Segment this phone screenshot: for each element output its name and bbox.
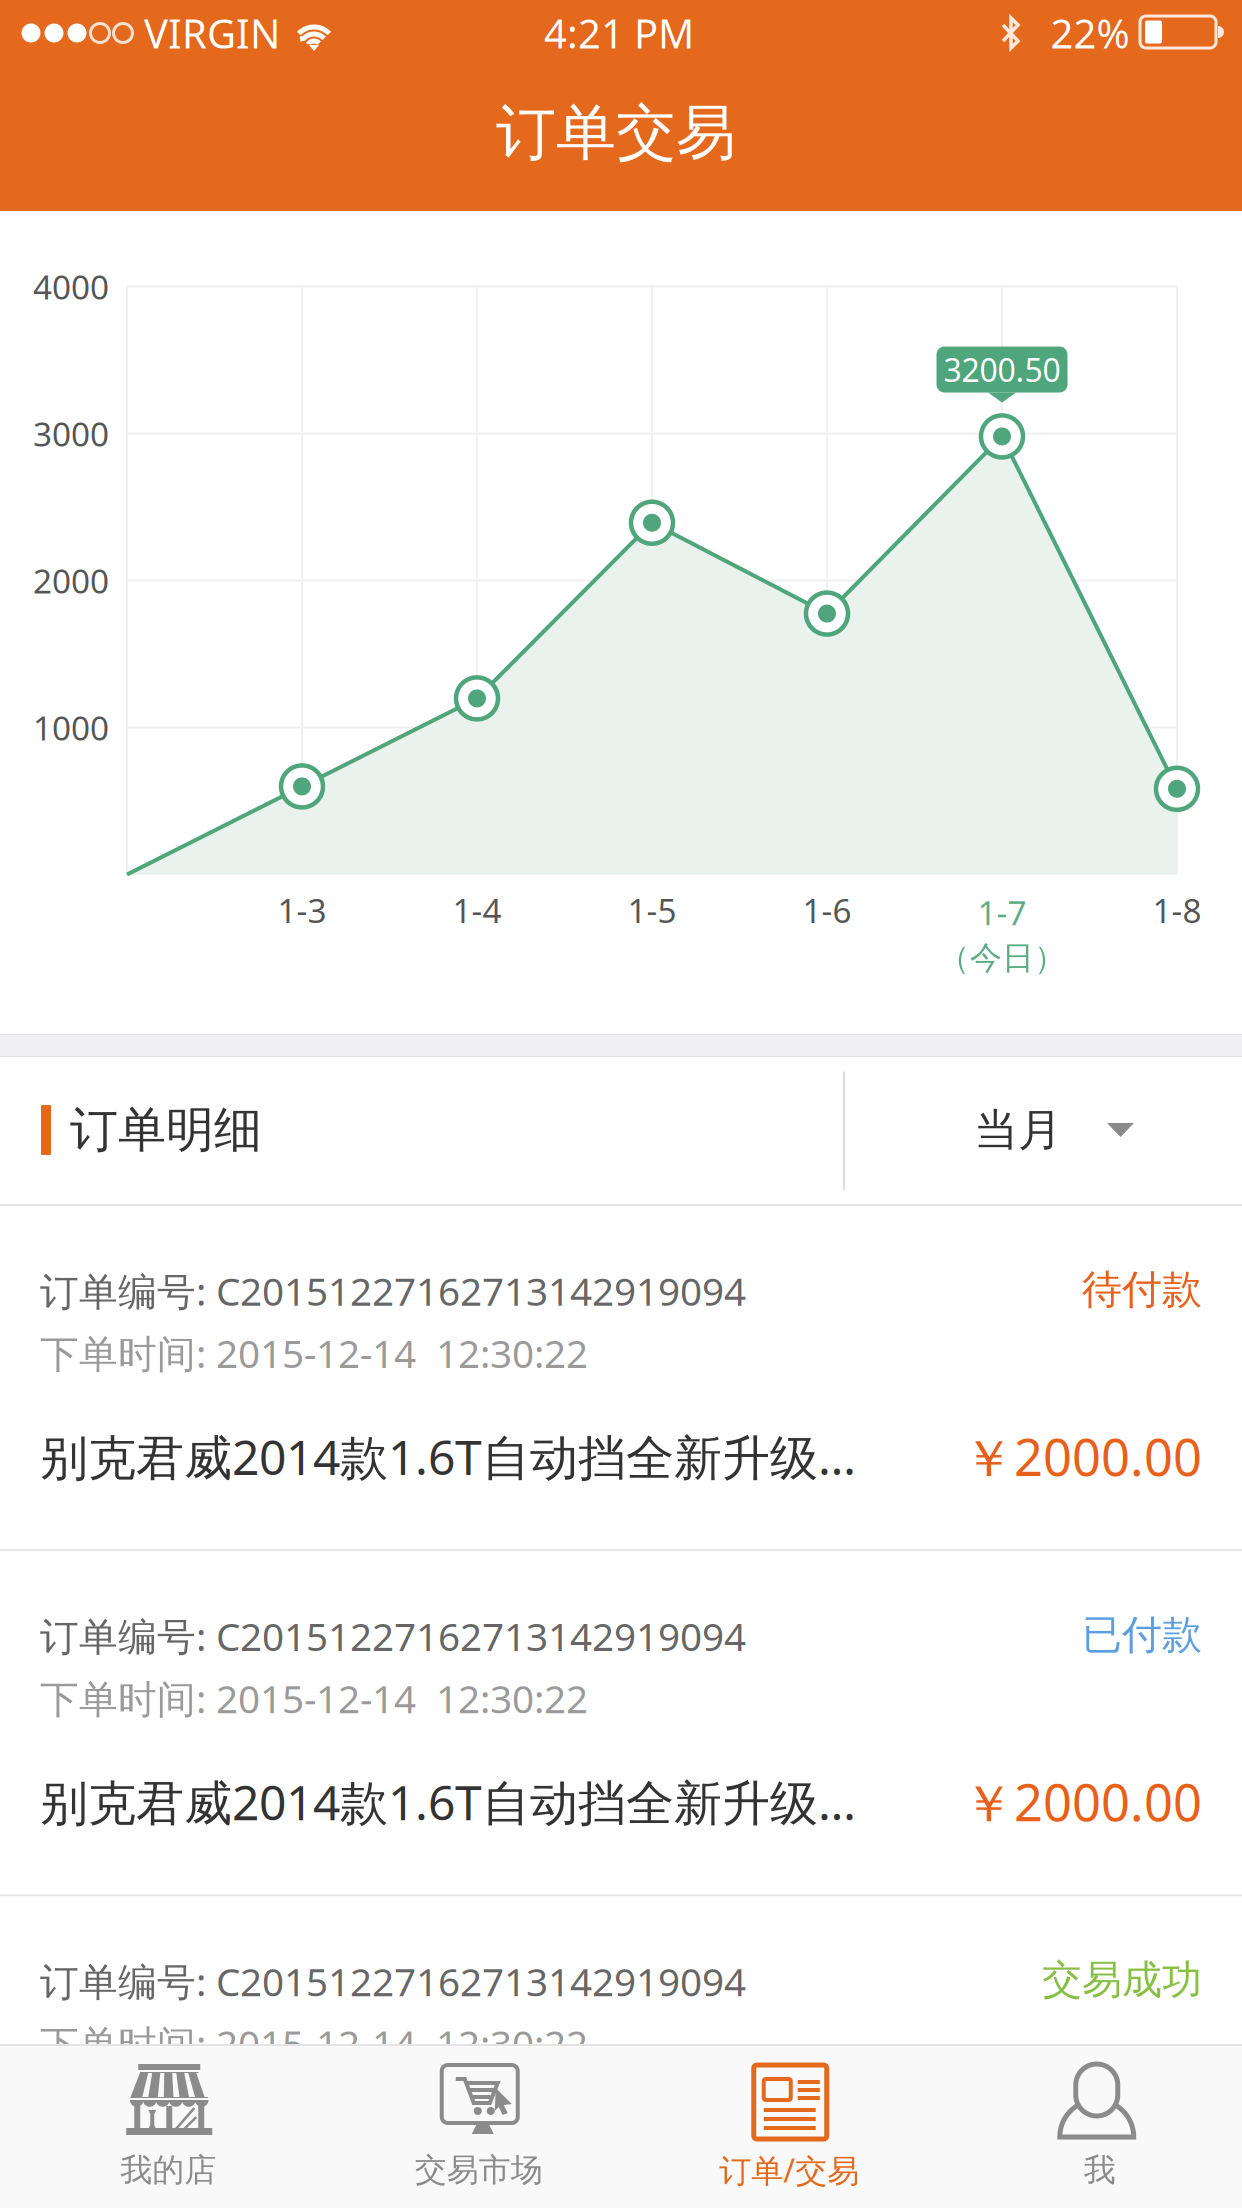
- staticText: 订单编号: C20151227162713142919094: [40, 1955, 746, 2007]
- button[interactable]: 订单编号: C20151227162713142919094: [0, 1896, 1242, 2208]
- staticText: 下单时间: 2015-12-14 12:30:22: [40, 1673, 588, 1724]
- staticText: 下单时间: 2015-12-14 12:30:22: [40, 2018, 588, 2069]
- staticText: 3000: [33, 411, 109, 456]
- staticText: 1-8: [1152, 888, 1201, 932]
- staticText: 1-4: [452, 888, 501, 932]
- staticText: 1000: [33, 705, 109, 750]
- button[interactable]: 订单/交易: [621, 2046, 931, 2208]
- staticText: 22%: [1050, 6, 1129, 59]
- staticText: 订单明细: [70, 1100, 262, 1159]
- staticText: （今日）: [938, 938, 1066, 978]
- staticText: 已付款: [1082, 1610, 1202, 1659]
- staticText: 3200.50: [943, 348, 1060, 391]
- staticText: ￥2000.00: [963, 1423, 1202, 1490]
- button[interactable]: 当月: [855, 1056, 1242, 1203]
- staticText: 4:21 PM: [544, 6, 694, 59]
- button[interactable]: 我的店: [0, 2046, 310, 2208]
- staticText: 订单/交易: [719, 2149, 859, 2191]
- staticText: 下单时间: 2015-12-14 12:30:22: [40, 1327, 588, 1379]
- staticText: 1-5: [627, 888, 676, 932]
- button[interactable]: 我: [931, 2046, 1242, 2208]
- staticText: 1-7: [977, 890, 1026, 934]
- staticText: 我: [1084, 2150, 1116, 2190]
- staticText: 订单编号: C20151227162713142919094: [40, 1610, 746, 1661]
- staticText: 待付款: [1082, 1265, 1202, 1314]
- staticText: 2000: [33, 558, 109, 603]
- staticText: ￥2000.00: [963, 1768, 1202, 1835]
- button[interactable]: 订单编号: C20151227162713142919094: [0, 1206, 1242, 1549]
- staticText: 我的店: [120, 2150, 216, 2190]
- staticText: VIRGIN: [144, 6, 280, 59]
- staticText: 别克君威2014款1.6T自动挡全新升级…: [40, 2115, 856, 2179]
- staticText: 1-6: [802, 888, 851, 932]
- staticText: 订单交易: [496, 96, 736, 170]
- staticText: ￥2000.00: [963, 2113, 1202, 2181]
- staticText: 1-3: [277, 888, 326, 932]
- staticText: 交易成功: [1042, 1955, 1202, 2005]
- staticText: 订单编号: C20151227162713142919094: [40, 1265, 746, 1316]
- staticText: 4000: [33, 264, 109, 309]
- staticText: 别克君威2014款1.6T自动挡全新升级…: [40, 1770, 856, 1833]
- button[interactable]: 订单编号: C20151227162713142919094: [0, 1551, 1242, 1894]
- button[interactable]: 交易市场: [310, 2046, 621, 2208]
- staticText: 交易市场: [415, 2150, 543, 2190]
- staticText: 当月: [974, 1103, 1062, 1157]
- staticText: 别克君威2014款1.6T自动挡全新升级…: [40, 1425, 856, 1488]
